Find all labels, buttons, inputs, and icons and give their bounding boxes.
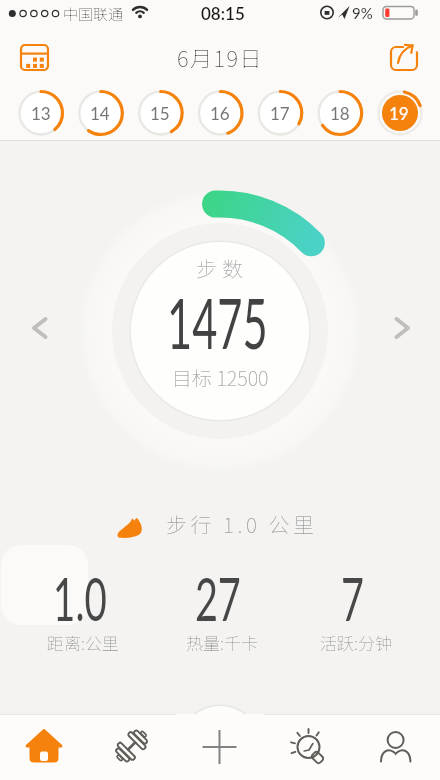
staticText: 1475 (167, 280, 268, 360)
staticText: 15 (150, 103, 170, 123)
staticText: 步行 1.0 公里 (166, 509, 318, 539)
button[interactable] (272, 716, 344, 778)
button[interactable] (10, 38, 58, 78)
button[interactable]: 16 (198, 91, 242, 135)
button[interactable]: 13 (19, 91, 63, 135)
button[interactable] (360, 716, 432, 778)
staticText: 27 (195, 562, 241, 626)
staticText: 08:15 (201, 3, 245, 23)
staticText: 目标 12500 (172, 363, 269, 392)
button[interactable]: 15 (138, 91, 182, 135)
staticText: 18 (330, 103, 350, 123)
staticText: 9% (352, 4, 373, 22)
staticText: 热量:千卡 (186, 630, 258, 655)
staticText: 16 (210, 103, 230, 123)
button[interactable]: 18 (318, 91, 362, 135)
button[interactable] (96, 716, 168, 778)
staticText: 13 (31, 103, 51, 123)
button[interactable]: 14 (78, 91, 122, 135)
staticText: 17 (270, 103, 290, 123)
button[interactable] (380, 304, 420, 352)
staticText: 步数 (196, 253, 248, 283)
button[interactable] (180, 706, 260, 780)
button[interactable] (20, 304, 60, 352)
staticText: 距离:公里 (47, 630, 119, 655)
staticText: 活跃:分钟 (320, 630, 392, 655)
staticText: 中国联通 (63, 3, 124, 23)
staticText: 14 (90, 103, 110, 123)
staticText: 6月19日 (177, 41, 263, 73)
button[interactable] (382, 38, 430, 78)
staticText: 1.0 (53, 562, 107, 626)
button[interactable] (8, 716, 80, 778)
button[interactable]: 19 (377, 91, 421, 135)
button[interactable] (3, 544, 88, 622)
button[interactable]: 17 (258, 91, 302, 135)
staticText: 19 (389, 103, 409, 123)
staticText: 7 (341, 562, 364, 626)
